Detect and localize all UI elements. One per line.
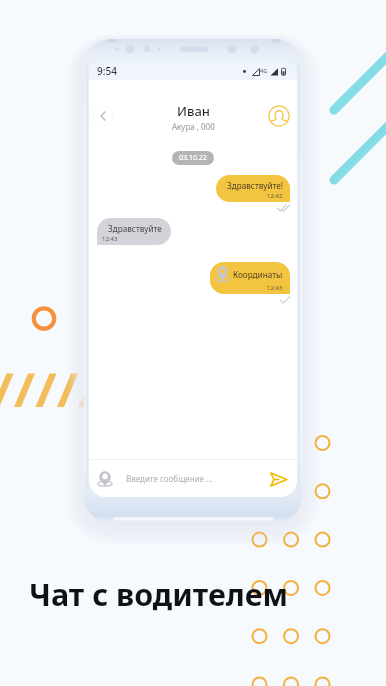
staticText: 03.10.22 [179,153,207,163]
staticText: Здравствуйте! [227,180,283,191]
staticText: 12:43 [102,235,118,243]
staticText: Чат с водителем [29,573,289,615]
staticText: 12:43 [267,284,283,292]
button[interactable]: Координаты [210,262,290,294]
button[interactable]: Back [93,106,113,126]
staticText: 12:42 [267,192,283,200]
staticText: 4G [260,67,268,74]
staticText: 9:54 [97,64,117,78]
button[interactable]: Здравствуйте! [216,175,290,202]
button[interactable]: Send [268,469,288,489]
button[interactable]: Здравствуйте [97,218,171,245]
button[interactable]: Attach location [96,470,114,488]
staticText: Акура , 000 [172,121,215,132]
button[interactable]: Profile [268,105,290,127]
staticText: Иван [177,102,210,120]
staticText: Координаты [233,269,283,280]
staticText: Введите сообщение ... [126,473,213,484]
button[interactable]: Attach location [89,460,297,497]
staticText: Здравствуйте [108,223,162,234]
